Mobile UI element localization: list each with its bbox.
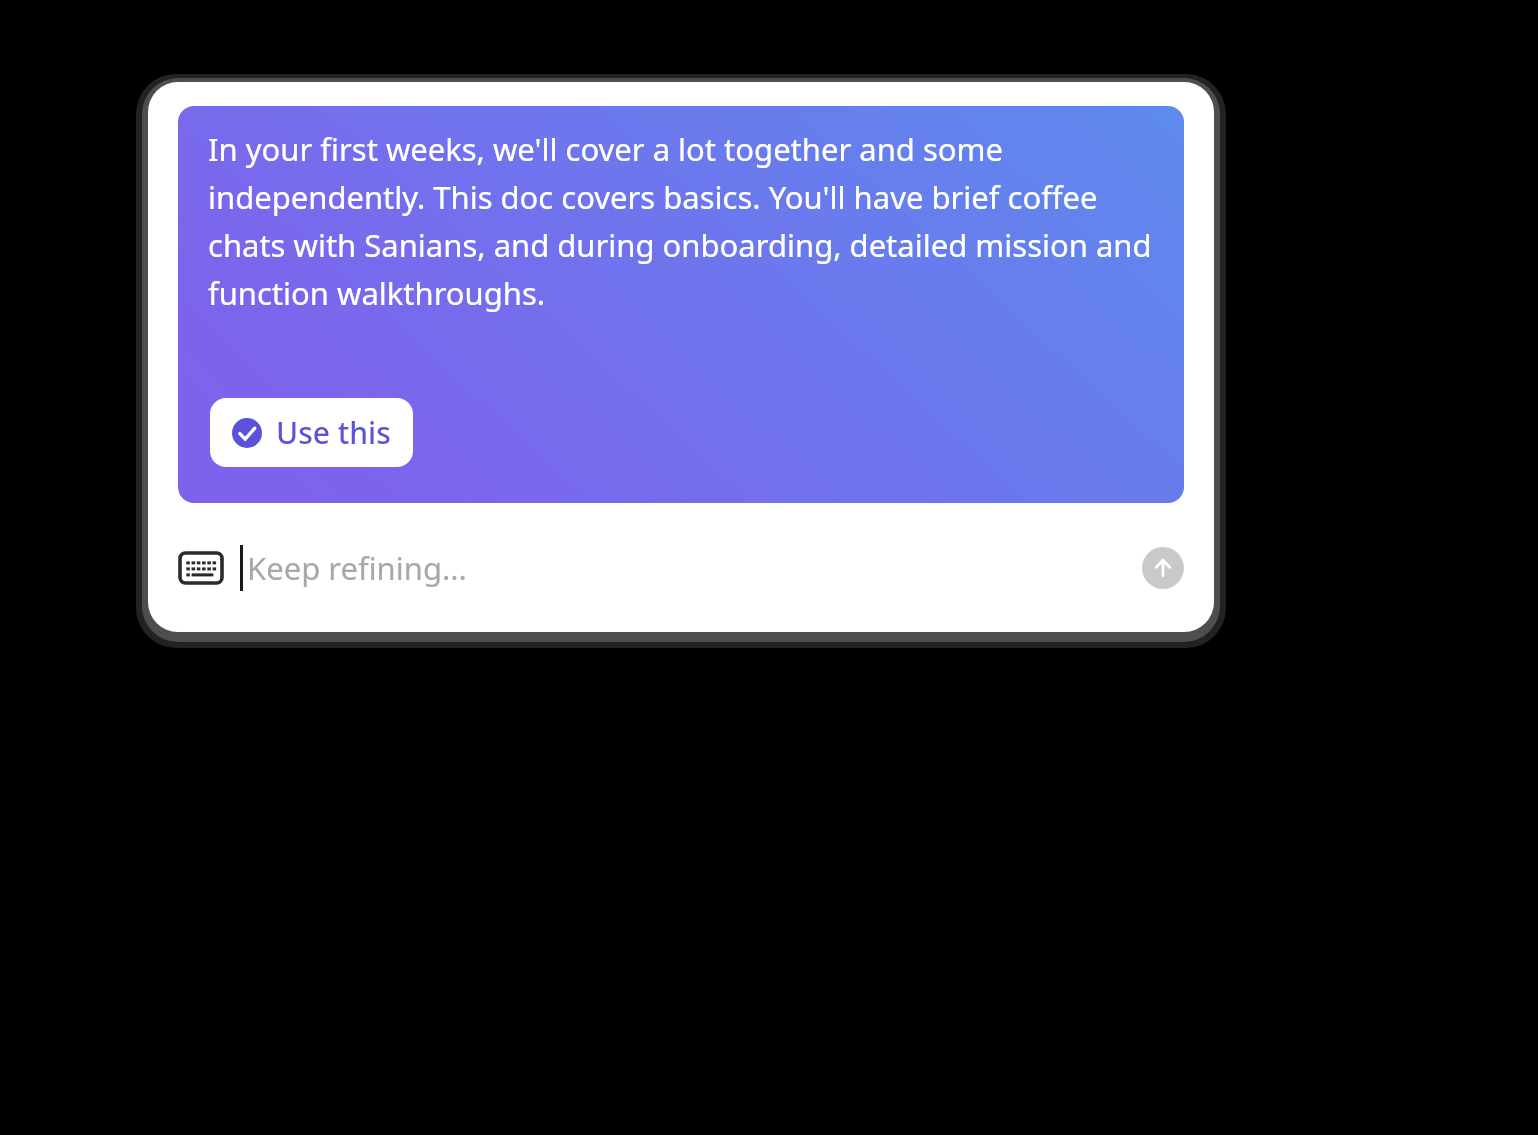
button[interactable]: Keep refining... <box>243 533 1142 603</box>
staticText: Keep refining... <box>247 547 467 589</box>
button[interactable]: Send <box>1142 547 1184 589</box>
staticText: Use this <box>276 412 391 453</box>
staticText: In your first weeks, we'll cover a lot t… <box>208 128 1158 314</box>
button[interactable]: Use this <box>210 398 413 467</box>
button[interactable]: Keyboard <box>178 545 224 591</box>
